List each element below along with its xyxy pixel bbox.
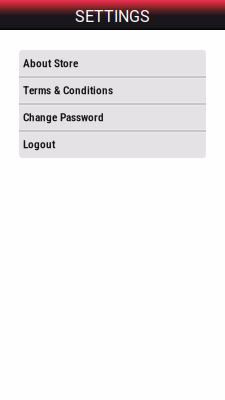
button[interactable]: Terms & Conditions (19, 77, 206, 104)
button[interactable]: Logout (19, 131, 206, 158)
button[interactable]: About Store (19, 50, 206, 77)
staticText: Logout (23, 138, 55, 151)
staticText: SETTINGS (75, 7, 150, 26)
staticText: Change Password (23, 111, 104, 124)
staticText: About Store (23, 57, 78, 70)
button[interactable]: Change Password (19, 104, 206, 131)
staticText: Terms & Conditions (23, 84, 113, 97)
